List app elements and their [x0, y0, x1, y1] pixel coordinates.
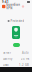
staticText: Latency [3, 57, 12, 60]
staticText: Guardian VPN [6, 3, 20, 10]
staticText: Auto [22, 51, 29, 54]
staticText: 1.2 GB [19, 63, 29, 67]
staticText: 9:41 [2, 0, 9, 4]
staticText: Protected [10, 19, 24, 23]
staticText: Data [3, 63, 8, 67]
staticText: Server [3, 51, 11, 54]
staticText: 24 ms [21, 57, 29, 60]
